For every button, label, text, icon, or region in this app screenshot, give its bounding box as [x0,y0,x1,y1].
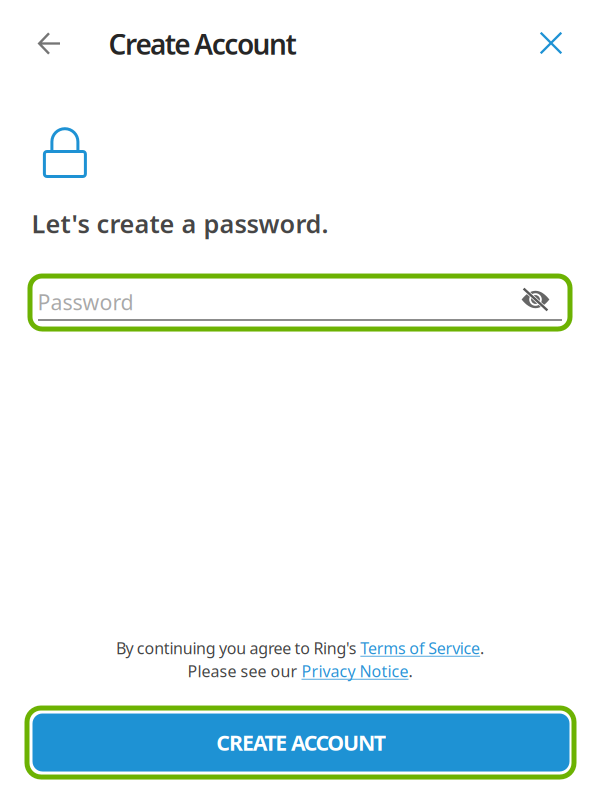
button[interactable]: CREATE ACCOUNT [32,713,569,771]
staticText: By continuing you agree to Ring's [116,637,360,659]
staticText: . [408,660,412,682]
staticText: CREATE ACCOUNT [216,728,386,757]
staticText: Privacy Notice [301,660,408,682]
button[interactable]: Terms of Service [360,637,480,659]
staticText: Terms of Service [360,637,480,659]
button[interactable]: Close [525,17,577,69]
button[interactable]: Show password [513,277,557,321]
staticText: Create Account [108,25,296,63]
staticText: Let's create a password. [31,207,328,240]
button[interactable]: Privacy Notice [301,660,408,682]
staticText: Password [37,288,133,316]
button[interactable]: Back [23,17,75,69]
staticText: . [480,637,484,659]
button[interactable]: Password [37,280,507,324]
staticText: Please see our [187,660,301,682]
